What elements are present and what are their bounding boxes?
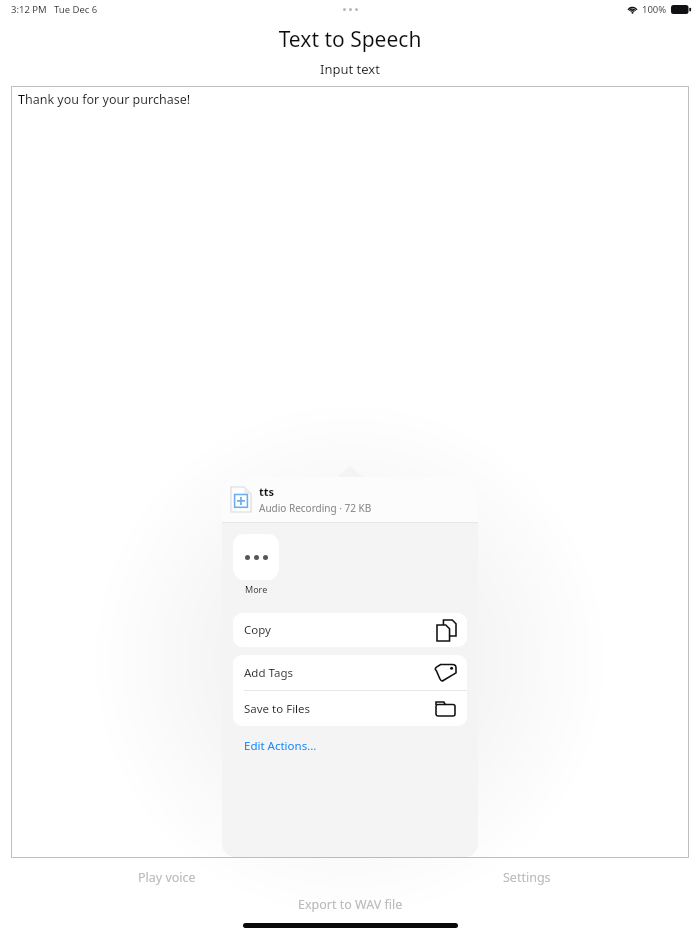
staticText: Export to WAV file (298, 896, 403, 913)
button[interactable]: More (233, 534, 279, 595)
button[interactable]: Export to WAV file (290, 893, 411, 916)
staticText: Input text (0, 60, 700, 78)
staticText: Audio Recording · 72 KB (259, 501, 372, 515)
button[interactable]: Copy (233, 613, 467, 647)
staticText: Thank you for your purchase! (18, 91, 191, 108)
button[interactable]: tts (222, 477, 478, 523)
staticText: tts (259, 484, 275, 499)
staticText: 100% (642, 3, 667, 16)
button[interactable]: Add Tags (233, 655, 467, 690)
staticText: Play voice (138, 869, 196, 886)
staticText: Tue Dec 6 (54, 3, 98, 16)
button[interactable]: Settings (495, 866, 559, 889)
staticText: Save to Files (244, 701, 311, 717)
button[interactable]: Play voice (130, 866, 204, 889)
staticText: Edit Actions… (244, 738, 317, 754)
button[interactable]: Thank you for your purchase! (11, 86, 689, 858)
other: Add Tags (434, 663, 456, 682)
other: Save to Files (435, 700, 456, 717)
staticText: Text to Speech (0, 25, 700, 54)
staticText: More (245, 583, 268, 595)
button[interactable]: Edit Actions… (233, 732, 328, 760)
staticText: Settings (503, 869, 551, 886)
other: Copy (437, 620, 456, 641)
staticText: Copy (244, 622, 271, 638)
staticText: Add Tags (244, 665, 293, 681)
button[interactable]: Save to Files (233, 691, 467, 726)
staticText: 3:12 PM (11, 3, 47, 16)
